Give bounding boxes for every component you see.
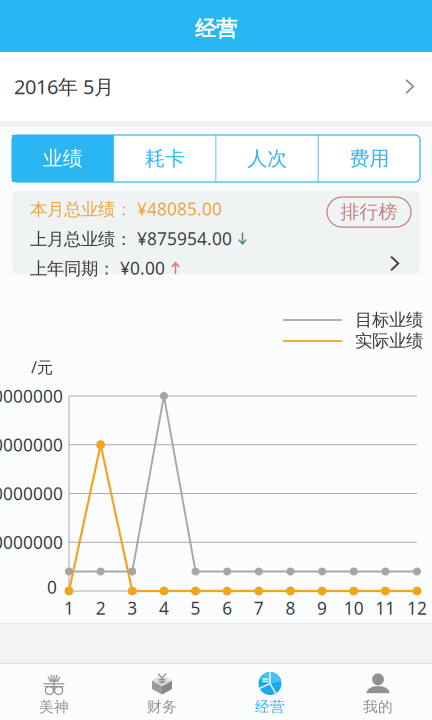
staticText: 上月总业绩： ¥875954.00 [30,227,232,250]
staticText: 1000000000 [0,384,63,408]
button[interactable]: 人次 [216,135,318,182]
staticText: 9 [317,596,327,620]
staticText: 我的 [363,697,393,716]
button[interactable]: 本月总业绩： ¥48085.00 [0,182,432,274]
button[interactable]: 财务 [108,663,216,720]
staticText: 6 [222,596,232,620]
staticText: 财务 [147,697,177,716]
staticText: 400000000 [0,530,63,554]
staticText: 耗卡 [145,146,185,171]
button[interactable]: 2016年 5月 [0,52,432,121]
staticText: 实际业绩 [355,330,423,352]
staticText: 11 [375,596,395,620]
staticText: 7 [254,596,264,620]
button[interactable]: 费用 [319,135,420,182]
button[interactable]: 耗卡 [114,135,215,182]
staticText: 上年同期： ¥0.00 [30,256,165,280]
button[interactable]: 业绩 [12,135,113,182]
staticText: 美神 [39,697,69,716]
staticText: 业绩 [43,146,83,171]
staticText: 5 [190,596,200,620]
staticText: 本月总业绩： ¥48085.00 [30,197,222,221]
staticText: 1 [64,596,74,620]
staticText: 0 [47,575,57,599]
staticText: 8 [285,596,295,620]
staticText: 人次 [247,146,287,171]
button[interactable]: 我的 [324,663,432,720]
staticText: 目标业绩 [355,309,423,331]
button[interactable]: 经营 [216,663,324,720]
staticText: 3 [127,596,137,620]
staticText: 800000000 [0,433,63,456]
staticText: /元 [31,356,53,378]
staticText: 费用 [349,146,389,171]
staticText: 4 [159,596,169,620]
staticText: 12 [407,596,427,620]
button[interactable]: 美神 [0,663,108,720]
staticText: 经营 [255,697,285,716]
staticText: 经营 [195,16,237,42]
staticText: 2 [96,596,106,620]
staticText: 2016年 5月 [14,73,114,100]
staticText: 10 [344,596,364,620]
staticText: 排行榜 [340,200,397,224]
staticText: 600000000 [0,482,63,505]
